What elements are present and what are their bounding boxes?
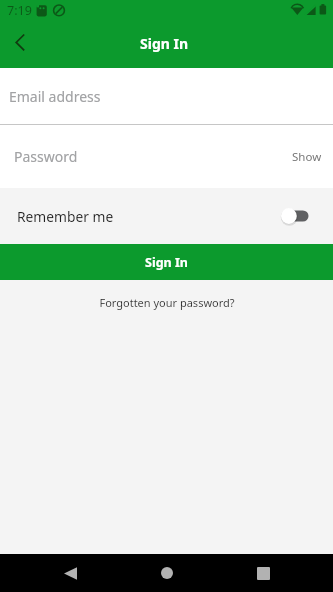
staticText: Forgotten your password? (99, 295, 235, 310)
button[interactable]: Home (143, 554, 191, 592)
button[interactable]: Email address (0, 68, 333, 124)
button[interactable]: Back (0, 24, 40, 68)
staticText: 7:19 (7, 2, 32, 19)
staticText: Remember me (17, 207, 114, 226)
button[interactable]: Show (280, 140, 333, 174)
button[interactable]: Recent apps (239, 554, 287, 592)
staticText: Show (292, 149, 322, 165)
staticText: Sign In (140, 34, 189, 53)
button[interactable]: Sign In (0, 244, 333, 280)
button[interactable]: Remember me (281, 196, 333, 236)
button[interactable]: Forgotten your password? (89, 291, 245, 314)
staticText: Sign In (145, 254, 188, 271)
button[interactable]: Back (46, 554, 94, 592)
button[interactable]: Remember me (0, 188, 333, 244)
staticText: Password (14, 147, 78, 166)
staticText: Email address (9, 87, 101, 106)
button[interactable]: Password (0, 125, 333, 188)
